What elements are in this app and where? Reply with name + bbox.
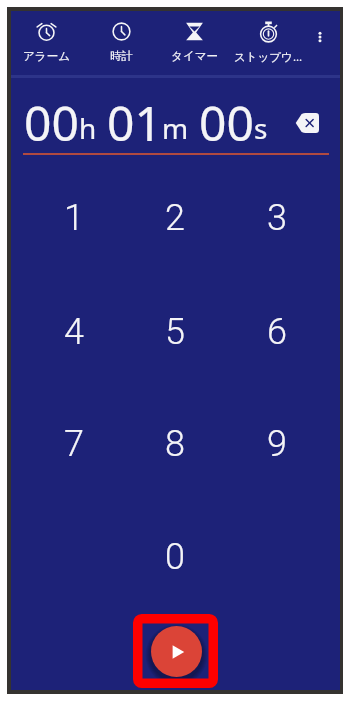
- staticText: 1: [64, 197, 84, 239]
- button[interactable]: アラーム: [10, 11, 82, 64]
- staticText: 7: [64, 423, 84, 465]
- button[interactable]: 7: [23, 388, 124, 500]
- button[interactable]: 1: [23, 162, 124, 274]
- staticText: 時計: [110, 49, 133, 63]
- staticText: 01: [107, 90, 162, 148]
- staticText: 00: [199, 90, 254, 148]
- button[interactable]: Backspace: [287, 105, 327, 141]
- staticText: 8: [165, 423, 185, 465]
- button[interactable]: 時計: [85, 11, 157, 64]
- staticText: 3: [267, 197, 287, 239]
- button[interactable]: 6: [226, 276, 327, 388]
- staticText: s: [254, 109, 268, 147]
- staticText: ストップウ…: [234, 49, 302, 65]
- button[interactable]: 0: [124, 501, 225, 613]
- button[interactable]: 4: [23, 276, 124, 388]
- staticText: 2: [165, 197, 185, 239]
- button[interactable]: 2: [124, 162, 225, 274]
- button[interactable]: 5: [124, 276, 225, 388]
- button[interactable]: 3: [226, 162, 327, 274]
- button[interactable]: ストップウ…: [232, 11, 304, 64]
- button[interactable]: Start timer: [151, 626, 202, 677]
- button[interactable]: タイマー: [158, 11, 230, 64]
- staticText: 0: [165, 536, 185, 578]
- staticText: h: [79, 109, 97, 147]
- staticText: 5: [165, 311, 185, 353]
- staticText: 4: [64, 311, 84, 353]
- staticText: タイマー: [171, 49, 218, 63]
- staticText: アラーム: [23, 49, 70, 63]
- staticText: 00: [24, 90, 79, 148]
- staticText: m: [162, 109, 189, 147]
- button[interactable]: More options: [306, 15, 334, 59]
- button[interactable]: 9: [226, 388, 327, 500]
- staticText: 9: [267, 423, 287, 465]
- button[interactable]: 8: [124, 388, 225, 500]
- staticText: 6: [267, 311, 287, 353]
